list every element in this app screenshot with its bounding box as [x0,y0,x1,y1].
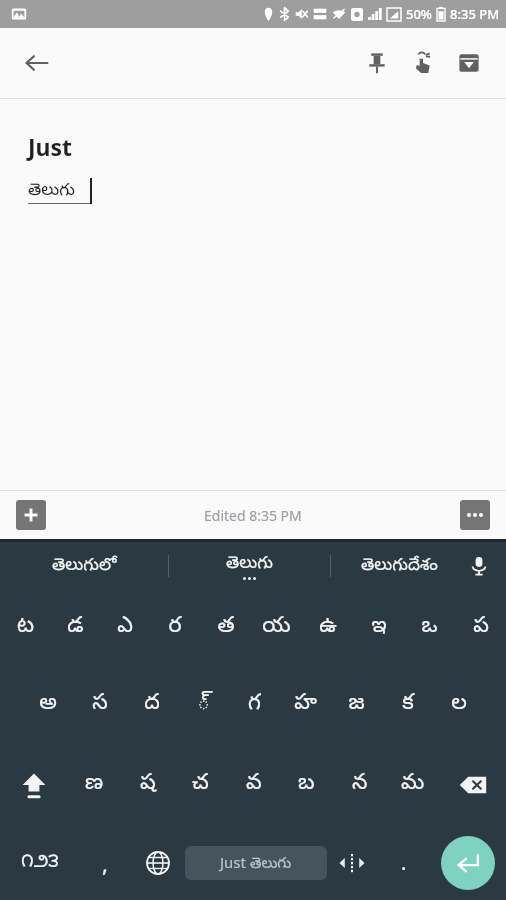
staticText: ప [473,613,489,643]
button[interactable]: హ [280,665,331,745]
button[interactable]: Add [16,500,46,530]
button[interactable]: తెలుగు [169,542,330,590]
button[interactable]: గ [229,665,280,745]
button[interactable]: Enter [441,836,495,890]
button[interactable]: ట [0,590,50,665]
button[interactable]: More options [460,500,490,530]
button[interactable]: స [74,665,126,745]
staticText: జ [348,690,365,720]
button[interactable]: వ [227,745,280,825]
button[interactable]: న [333,745,386,825]
staticText: అ [39,690,57,720]
button[interactable]: ఎ [100,590,150,665]
button[interactable]: జ [331,665,382,745]
button[interactable]: ర [150,590,200,665]
staticText: . [401,849,407,876]
staticText: ట [17,613,34,643]
button[interactable]: తెలుగులో [0,542,168,590]
button[interactable]: ్ [178,665,229,745]
staticText: ఇ [371,613,387,643]
staticText: ద [144,690,160,720]
staticText: Just [28,131,73,162]
staticText: 50% [406,5,432,23]
button[interactable]: Just తెలుగు [185,846,327,880]
staticText: , [102,848,108,878]
staticText: డ [67,613,84,643]
staticText: న [352,770,368,800]
button[interactable]: ఇ [353,590,404,665]
button[interactable]: క [382,665,433,745]
staticText: తెలుగులో [52,555,117,578]
staticText: క [402,690,414,720]
button[interactable]: ౧౨౩ [0,825,80,900]
staticText: తెలుగు [226,553,273,576]
button[interactable]: అ [22,665,74,745]
button[interactable]: Back [14,40,60,86]
button[interactable]: బ [280,745,333,825]
staticText: చ [192,770,209,800]
staticText: తెలుగు [28,180,75,203]
staticText: ఉ [319,613,337,643]
button[interactable]: మ [386,745,439,825]
staticText: Just తెలుగు [220,852,292,875]
button[interactable]: Change language [130,825,185,900]
staticText: గ [248,690,261,720]
staticText: త [217,613,235,643]
button[interactable]: Reminder [400,40,446,86]
button[interactable]: Pin [354,40,400,86]
button[interactable]: డ [50,590,100,665]
staticText: Edited 8:35 PM [204,506,302,525]
button[interactable]: ణ [68,745,121,825]
staticText: ్ [197,690,210,720]
button[interactable]: య [251,590,302,665]
button[interactable]: Shift [0,745,68,825]
button[interactable]: Move cursor [327,825,377,900]
button[interactable]: ష [121,745,174,825]
staticText: స [92,690,108,720]
button[interactable]: ల [433,665,484,745]
button[interactable]: Voice input [462,549,496,583]
staticText: ఎ [117,613,133,643]
staticText: మ [401,770,425,800]
button[interactable]: , [80,825,130,900]
staticText: తెలుగుదేశం [361,555,438,578]
button[interactable]: చ [174,745,227,825]
staticText: య [262,613,291,643]
staticText: హ [294,690,317,720]
staticText: వ [246,770,262,800]
button[interactable]: ద [126,665,178,745]
button[interactable]: ప [455,590,506,665]
button[interactable]: Backspace [439,745,506,825]
staticText: ష [140,770,156,800]
staticText: ఒ [421,613,438,643]
button[interactable]: తెలుగుదేశం [331,542,468,590]
button[interactable]: త [200,590,251,665]
button[interactable]: Archive [446,40,492,86]
staticText: బ [298,770,315,800]
button[interactable]: ఉ [302,590,353,665]
button[interactable]: . [377,825,430,900]
staticText: ర [168,613,182,643]
button[interactable]: ఒ [404,590,455,665]
staticText: ల [451,690,467,720]
staticText: 8:35 PM [450,5,500,23]
staticText: ౧౨౩ [21,850,59,876]
staticText: ణ [85,770,104,800]
